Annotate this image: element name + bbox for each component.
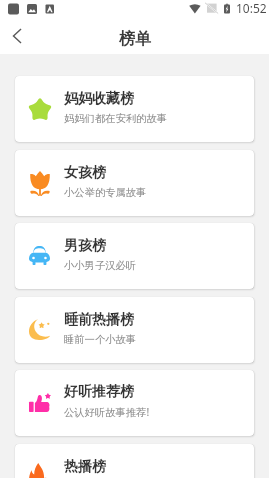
staticText: 睡前一个小故事 xyxy=(64,333,137,346)
staticText: 小公举的专属故事 xyxy=(64,186,147,199)
staticText: 妈妈收藏榜 xyxy=(64,90,134,108)
staticText: 10:52 xyxy=(236,0,267,16)
button[interactable]: 好听推荐榜 xyxy=(15,370,254,436)
button[interactable]: 妈妈收藏榜 xyxy=(15,76,254,142)
staticText: 女孩榜 xyxy=(64,164,106,182)
staticText: 小小男子汉必听 xyxy=(64,259,137,272)
staticText: 好听推荐榜 xyxy=(64,383,134,401)
staticText: 公认好听故事推荐! xyxy=(64,405,150,419)
staticText: 男孩榜 xyxy=(64,237,106,255)
staticText: 榜单 xyxy=(119,29,151,49)
staticText: 睡前热播榜 xyxy=(64,311,134,329)
button[interactable]: 睡前热播榜 xyxy=(15,297,254,363)
button[interactable]: 女孩榜 xyxy=(15,150,254,216)
button[interactable]: 男孩榜 xyxy=(15,223,254,289)
button[interactable]: Back xyxy=(1,20,33,52)
button[interactable]: 热播榜 xyxy=(15,444,254,478)
staticText: 热播榜 xyxy=(64,458,106,476)
staticText: 妈妈们都在安利的故事 xyxy=(64,112,167,125)
